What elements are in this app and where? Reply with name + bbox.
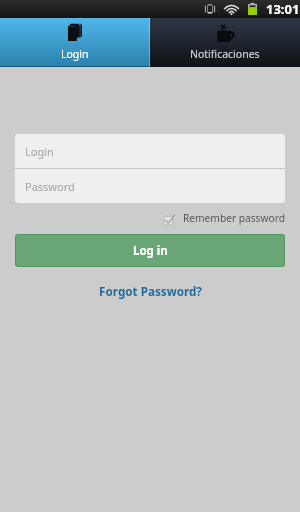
staticText: Log in: [133, 243, 168, 259]
staticText: Login: [61, 47, 89, 61]
button[interactable]: Log in: [16, 235, 284, 266]
button[interactable]: Remember password: [164, 211, 285, 225]
staticText: Login: [25, 144, 54, 159]
staticText: Remember password: [183, 211, 285, 225]
staticText: 13:01: [266, 0, 300, 18]
button[interactable]: Login: [15, 134, 285, 168]
button[interactable]: Notificaciones: [150, 18, 300, 67]
staticText: Notificaciones: [190, 47, 260, 61]
button[interactable]: Forgot Password?: [99, 283, 202, 299]
button[interactable]: Password: [15, 169, 285, 203]
button[interactable]: Login: [0, 18, 150, 67]
staticText: Password: [25, 179, 75, 194]
